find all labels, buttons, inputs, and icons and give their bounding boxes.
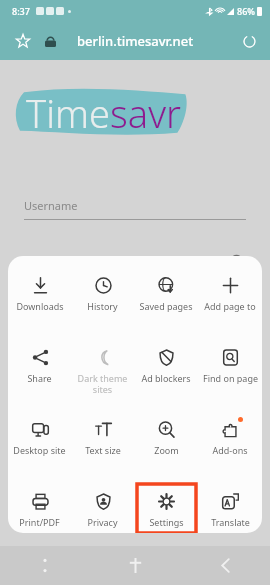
button[interactable]: Privacy [71, 484, 134, 533]
staticText: Desktop site [13, 444, 66, 456]
button[interactable]: Back [180, 546, 270, 585]
staticText: Downloads [16, 300, 64, 312]
staticText: History [87, 300, 118, 312]
staticText: 8:37 [12, 5, 30, 17]
button[interactable]: Ad blockers [134, 340, 198, 412]
staticText: Text size [85, 444, 121, 456]
button[interactable]: Downloads [8, 268, 71, 340]
button[interactable]: Translate [198, 484, 262, 533]
staticText: berlin.timesavr.net [77, 32, 194, 50]
button[interactable]: Text size [71, 412, 134, 484]
button[interactable]: Dark theme sites [71, 340, 134, 412]
staticText: Settings [149, 516, 184, 528]
button[interactable]: Find on page [198, 340, 262, 412]
staticText: Username [24, 198, 78, 213]
button[interactable]: Share [8, 340, 71, 412]
staticText: Add-ons [212, 444, 248, 456]
staticText: Share [27, 372, 52, 384]
staticText: Add page to [204, 300, 256, 312]
staticText: Time [26, 87, 110, 139]
staticText: Print/PDF [19, 516, 60, 528]
button[interactable]: Add page to [198, 268, 262, 340]
staticText: Saved pages [139, 300, 193, 312]
button[interactable]: Add-ons [198, 412, 262, 484]
button[interactable]: Zoom [134, 412, 198, 484]
staticText: 86% [237, 5, 255, 17]
staticText: Translate [211, 516, 250, 528]
button[interactable]: Reload [236, 28, 262, 54]
button[interactable]: Saved pages [134, 268, 198, 340]
button[interactable]: Print/PDF [8, 484, 71, 533]
button[interactable]: History [71, 268, 134, 340]
staticText: Ad blockers [141, 372, 191, 384]
staticText: Privacy [87, 516, 118, 528]
button[interactable]: Settings [134, 484, 198, 533]
staticText: Zoom [154, 444, 179, 456]
staticText: Password [24, 252, 74, 267]
button[interactable]: Bookmark [10, 28, 36, 54]
staticText: Dark theme sites [73, 372, 132, 395]
button[interactable]: Desktop site [8, 412, 71, 484]
staticText: Find on page [203, 372, 258, 384]
button[interactable]: Home [90, 546, 180, 585]
button[interactable]: Show password [226, 249, 246, 269]
button[interactable]: Site security [38, 29, 62, 53]
staticText: savr [110, 87, 181, 139]
